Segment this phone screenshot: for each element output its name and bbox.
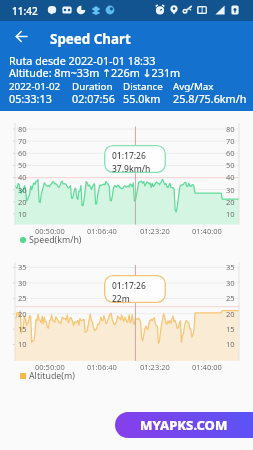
- button[interactable]: Back: [8, 23, 34, 49]
- staticText: 70: [226, 136, 235, 146]
- staticText: 40: [226, 172, 235, 182]
- staticText: 01:06:40: [87, 362, 117, 372]
- staticText: Ruta desde 2022-01-01 18:33: [9, 53, 156, 68]
- staticText: 35: [226, 262, 235, 272]
- staticText: 50: [18, 160, 27, 170]
- staticText: 30: [18, 278, 27, 288]
- staticText: 25: [18, 293, 27, 303]
- staticText: Altitude: 8m~33m ↑226m ↓231m: [9, 65, 181, 80]
- staticText: 00:50:00: [35, 362, 65, 372]
- staticText: 20: [226, 309, 235, 319]
- staticText: 15: [18, 324, 27, 334]
- staticText: 22m: [112, 293, 130, 303]
- button[interactable]: MYAPKS.COM: [115, 412, 253, 438]
- staticText: Duration: [72, 80, 113, 93]
- staticText: 70: [18, 136, 27, 146]
- staticText: Altitude(m): [29, 370, 75, 382]
- staticText: 02:07:56: [72, 91, 115, 106]
- staticText: 10: [226, 339, 235, 349]
- staticText: MYAPKS.COM: [140, 416, 228, 434]
- staticText: 60: [226, 148, 235, 158]
- staticText: 10: [18, 209, 27, 219]
- staticText: 11:42: [12, 4, 38, 18]
- staticText: Distance: [123, 80, 163, 93]
- staticText: 80: [18, 124, 27, 134]
- staticText: 37.9km/h: [112, 163, 151, 173]
- staticText: 01:17:26: [112, 280, 146, 292]
- staticText: 20: [18, 309, 27, 319]
- staticText: 01:06:40: [87, 226, 117, 236]
- staticText: 05:33:13: [9, 91, 52, 106]
- staticText: 30: [18, 185, 27, 195]
- staticText: 60: [18, 148, 27, 158]
- staticText: 20: [226, 197, 235, 207]
- staticText: 01:23:20: [140, 362, 170, 372]
- staticText: 30: [226, 278, 235, 288]
- staticText: 30: [226, 185, 235, 195]
- staticText: 2022-01-02: [9, 80, 61, 93]
- staticText: Speed Chart: [50, 30, 131, 48]
- staticText: 25.8/75.6km/h: [173, 91, 247, 106]
- staticText: 10: [226, 209, 235, 219]
- staticText: Speed(km/h): [29, 234, 82, 246]
- staticText: Avg/Max: [173, 80, 214, 93]
- staticText: 40: [18, 172, 27, 182]
- staticText: 20: [18, 197, 27, 207]
- staticText: 50: [226, 160, 235, 170]
- staticText: 10: [18, 339, 27, 349]
- staticText: 00:50:00: [35, 226, 65, 236]
- staticText: 80: [226, 124, 235, 134]
- staticText: 01:40:00: [192, 226, 222, 236]
- staticText: 01:17:26: [112, 150, 146, 162]
- staticText: 55.0km: [123, 91, 161, 106]
- staticText: 15: [226, 324, 235, 334]
- staticText: 25: [226, 293, 235, 303]
- staticText: 01:23:20: [140, 226, 170, 236]
- staticText: 01:40:00: [192, 362, 222, 372]
- staticText: 35: [18, 262, 27, 272]
